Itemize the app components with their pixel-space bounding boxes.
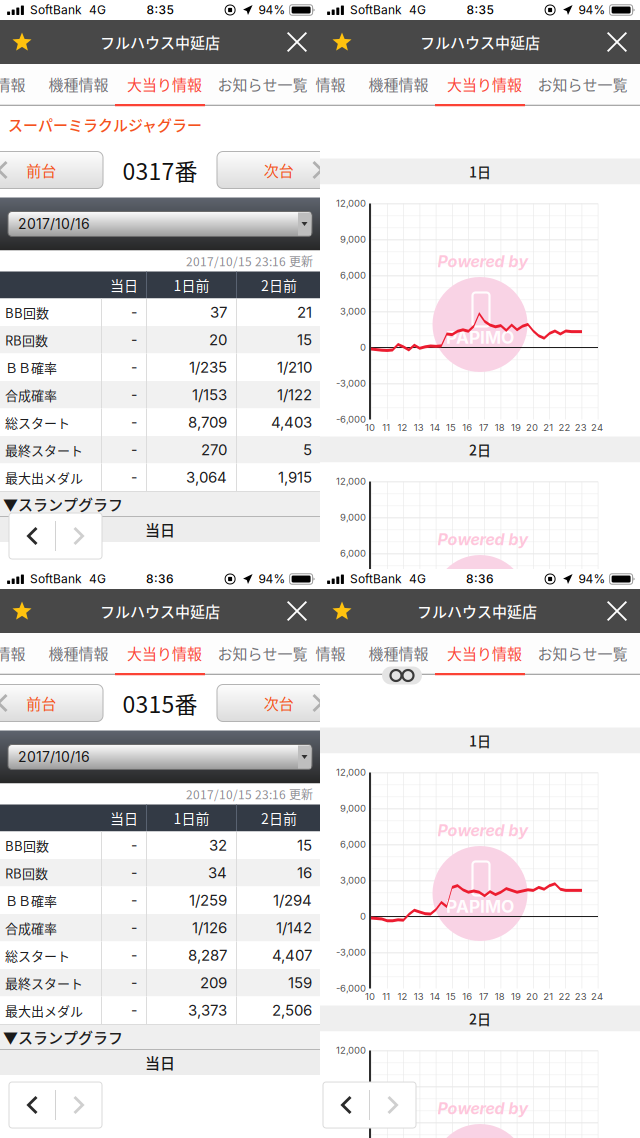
staticText: 情報	[315, 73, 345, 95]
staticText: 1/142	[276, 919, 312, 937]
staticText: 12	[397, 422, 407, 433]
button[interactable]: 前台	[0, 684, 103, 721]
staticText: 3,373	[188, 1001, 227, 1019]
button[interactable]: 大当り情報	[439, 633, 530, 673]
button[interactable]: 大当り情報	[439, 64, 530, 104]
button[interactable]: お知らせ一覧	[530, 64, 635, 104]
button[interactable]: 機種情報	[38, 633, 119, 673]
button[interactable]: 情報	[303, 64, 358, 104]
staticText: 23	[575, 422, 587, 433]
staticText: 15	[446, 422, 456, 433]
staticText: 2017/10/15 23:16 更新	[186, 785, 313, 803]
staticText: 24	[591, 422, 603, 433]
staticText: -	[131, 1002, 137, 1019]
button[interactable]: 前台	[0, 151, 103, 188]
staticText: 当日	[110, 808, 138, 828]
staticText: Powered by	[437, 821, 528, 840]
staticText: -	[131, 919, 137, 936]
button[interactable]: 情報	[303, 633, 358, 673]
button[interactable]: 大当り情報	[119, 64, 210, 104]
button[interactable]: 2017/10/16	[8, 744, 312, 769]
button[interactable]: 閉じる	[274, 20, 320, 64]
staticText: 5	[303, 441, 312, 459]
staticText: 合成確率	[5, 918, 57, 937]
staticText: 前台	[26, 159, 56, 181]
staticText: 0315番	[122, 686, 197, 720]
button[interactable]: 機種情報	[38, 64, 119, 104]
staticText: ＢＢ確率	[5, 358, 57, 377]
staticText: フルハウス中延店	[420, 31, 540, 53]
button[interactable]: お気に入り	[320, 20, 366, 64]
staticText: 15	[297, 836, 312, 854]
button[interactable]: 次へ	[370, 1082, 416, 1128]
staticText: 0317番	[122, 153, 197, 187]
button[interactable]: 次へ	[56, 513, 102, 559]
staticText: -	[131, 974, 137, 991]
staticText: 4G	[409, 3, 426, 17]
staticText: 0	[360, 341, 366, 353]
button[interactable]: 閉じる	[594, 20, 640, 64]
staticText: BB回数	[5, 836, 49, 855]
button[interactable]: 2017/10/16	[8, 211, 312, 236]
staticText: Powered by	[437, 1099, 528, 1118]
staticText: 最終スタート	[5, 440, 83, 459]
button[interactable]: お気に入り	[0, 20, 46, 64]
button[interactable]: 前へ	[323, 1082, 369, 1128]
staticText: 大当り情報	[127, 73, 202, 95]
staticText: 94%	[259, 3, 286, 17]
staticText: 2日前	[261, 808, 297, 828]
button[interactable]: お知らせ一覧	[530, 633, 635, 673]
staticText: 1日前	[173, 808, 209, 828]
button[interactable]: 次へ	[56, 1082, 102, 1128]
staticText: 34	[208, 864, 227, 882]
button[interactable]: お気に入り	[320, 589, 366, 633]
button[interactable]: お気に入り	[0, 589, 46, 633]
button[interactable]: 機種情報	[358, 64, 439, 104]
staticText: 機種情報	[48, 642, 108, 664]
staticText: 0	[360, 910, 366, 922]
staticText: 次台	[264, 159, 294, 181]
button[interactable]: 情報	[0, 64, 38, 104]
staticText: 1/153	[192, 386, 227, 404]
staticText: 13	[414, 422, 424, 433]
staticText: 16	[462, 991, 472, 1002]
staticText: 15	[297, 331, 312, 349]
staticText: 20	[526, 991, 538, 1002]
staticText: 1日	[469, 161, 491, 182]
button[interactable]: 閉じる	[274, 589, 320, 633]
staticText: PAPIMO	[446, 896, 514, 917]
button[interactable]: お知らせ一覧	[210, 64, 315, 104]
staticText: 159	[288, 974, 312, 992]
staticText: Powered by	[437, 252, 528, 271]
staticText: 機種情報	[368, 73, 428, 95]
staticText: 総スタート	[5, 946, 70, 965]
staticText: 4G	[89, 3, 106, 17]
staticText: 13	[414, 991, 424, 1002]
staticText: 37	[210, 303, 227, 321]
staticText: 大当り情報	[447, 73, 522, 95]
button[interactable]: 情報	[0, 633, 38, 673]
staticText: 当日	[110, 275, 138, 295]
button[interactable]: 前へ	[9, 1082, 55, 1128]
button[interactable]: 前へ	[9, 513, 55, 559]
button[interactable]: 次台	[217, 151, 334, 188]
button[interactable]: 次台	[217, 684, 334, 721]
button[interactable]: 機種情報	[358, 633, 439, 673]
button[interactable]: 閉じる	[594, 589, 640, 633]
button[interactable]: お知らせ一覧	[210, 633, 315, 673]
staticText: お知らせ一覧	[217, 73, 307, 95]
staticText: 1日前	[173, 275, 209, 295]
staticText: 16	[297, 864, 312, 882]
staticText: 4,403	[271, 413, 312, 431]
staticText: SoftBank	[350, 572, 402, 586]
button[interactable]: 大当り情報	[119, 633, 210, 673]
staticText: 8,287	[188, 946, 227, 964]
